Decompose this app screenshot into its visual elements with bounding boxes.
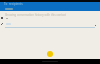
button[interactable]: Tab: [5, 8, 13, 10]
button[interactable]: Compose: [47, 51, 53, 57]
staticText: Showing conversation history with this c…: [5, 13, 67, 17]
staticText: To recipients: [4, 2, 23, 6]
